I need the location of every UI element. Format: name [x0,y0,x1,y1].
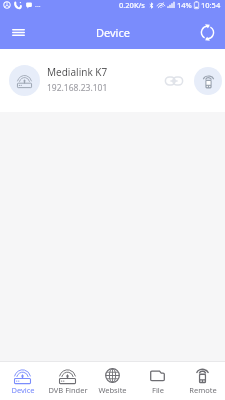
button[interactable]: Medialink K7 [0,49,225,112]
button[interactable]: Link device [160,67,188,95]
staticText: Device [96,25,130,40]
button[interactable]: DVB Finder [45,362,90,400]
staticText: 10:54 [201,0,221,10]
staticText: 14% [177,0,192,10]
button[interactable]: Navigation menu [5,19,31,45]
button[interactable]: Website [90,362,135,400]
staticText: DVB Finder [48,385,88,395]
button[interactable]: Remote [180,362,225,400]
staticText: File [152,385,164,395]
staticText: 192.168.23.101 [47,82,108,94]
button[interactable]: File [135,362,180,400]
staticText: 0.20K/s [119,0,145,10]
button[interactable]: Device [0,362,45,400]
staticText: Website [98,385,127,395]
button[interactable]: Remote control [194,67,222,95]
button[interactable]: Refresh [194,19,220,45]
staticText: Medialink K7 [47,65,108,79]
staticText: ... [35,0,41,10]
staticText: Device [11,385,35,395]
staticText: Remote [189,385,217,395]
